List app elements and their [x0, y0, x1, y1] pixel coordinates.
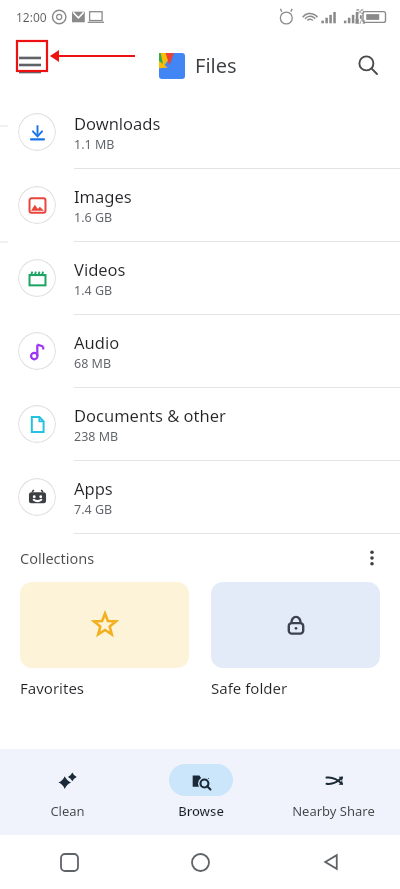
- button[interactable]: Open navigation menu: [12, 47, 48, 83]
- button[interactable]: Search: [348, 45, 388, 85]
- staticText: Nearby Share: [292, 802, 375, 820]
- staticText: Collections: [20, 548, 95, 568]
- staticText: 12:00: [16, 9, 47, 25]
- button[interactable]: Audio: [0, 315, 400, 387]
- staticText: 7.4 GB: [74, 501, 113, 518]
- button[interactable]: Home: [177, 839, 223, 885]
- button[interactable]: More options: [354, 540, 390, 576]
- staticText: Images: [74, 185, 132, 207]
- button[interactable]: Favorites: [20, 582, 189, 698]
- staticText: 56: [356, 7, 365, 17]
- staticText: Videos: [74, 258, 126, 280]
- staticText: Clean: [50, 802, 85, 820]
- button[interactable]: Nearby Share: [267, 749, 400, 835]
- staticText: Downloads: [74, 112, 161, 134]
- button[interactable]: Videos: [0, 242, 400, 314]
- button[interactable]: Downloads: [0, 96, 400, 168]
- staticText: Browse: [178, 802, 224, 820]
- button[interactable]: Back: [308, 839, 354, 885]
- staticText: Files: [195, 52, 237, 79]
- button[interactable]: Recent apps: [46, 839, 92, 885]
- staticText: Favorites: [20, 678, 85, 698]
- button[interactable]: Images: [0, 169, 400, 241]
- button[interactable]: Clean: [0, 749, 134, 835]
- staticText: B/s: [355, 17, 366, 27]
- staticText: Documents & other: [74, 404, 226, 426]
- staticText: 1.6 GB: [74, 209, 113, 226]
- staticText: 68 MB: [74, 355, 112, 372]
- staticText: 1.1 MB: [74, 136, 115, 153]
- button[interactable]: Browse: [134, 749, 267, 835]
- staticText: 1.4 GB: [74, 282, 113, 299]
- button[interactable]: Apps: [0, 461, 400, 533]
- button[interactable]: Documents & other: [0, 388, 400, 460]
- button[interactable]: Safe folder: [211, 582, 380, 698]
- staticText: Audio: [74, 331, 120, 353]
- staticText: Apps: [74, 477, 113, 499]
- staticText: 238 MB: [74, 428, 119, 445]
- staticText: Safe folder: [211, 678, 288, 698]
